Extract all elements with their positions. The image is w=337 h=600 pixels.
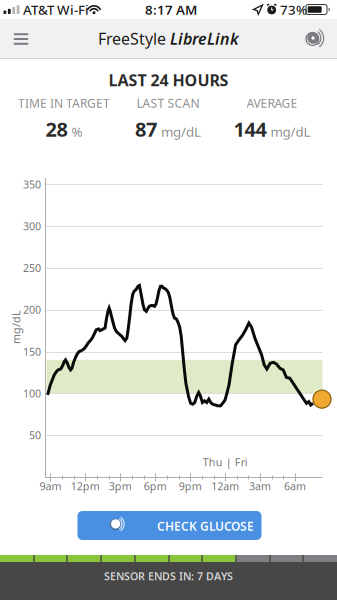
staticText: 200 (23, 303, 41, 317)
staticText: LAST SCAN (136, 95, 199, 111)
staticText: 350 (23, 177, 41, 191)
staticText: 3pm (109, 479, 132, 493)
staticText: AVERAGE (246, 95, 297, 111)
staticText: TIME IN TARGET (18, 95, 110, 111)
staticText: 6am (284, 479, 306, 493)
staticText: mg/dL (270, 123, 310, 140)
staticText: 87 (135, 116, 157, 142)
button[interactable]: Scan sensor (293, 19, 337, 58)
button[interactable]: CHECK GLUCOSE (77, 511, 261, 540)
staticText: mg/dL (161, 123, 201, 140)
staticText: % (71, 123, 82, 140)
staticText: 250 (23, 261, 41, 275)
staticText: FreeStyle LibreLink (98, 28, 239, 49)
staticText: 6pm (144, 479, 167, 493)
staticText: 12pm (71, 479, 100, 493)
staticText: AT&T Wi-Fi (23, 1, 89, 18)
staticText: 150 (23, 344, 41, 359)
staticText: 8:17 AM (145, 1, 197, 18)
staticText: LAST 24 HOURS (108, 69, 228, 91)
staticText: 73% (280, 1, 307, 18)
staticText: 28 (45, 116, 67, 142)
staticText: CHECK GLUCOSE (157, 518, 254, 534)
button[interactable]: Menu (0, 19, 42, 58)
staticText: mg/dL (0, 320, 33, 334)
staticText: 300 (23, 219, 41, 233)
staticText: 50 (29, 428, 41, 442)
staticText: 12am (211, 479, 239, 493)
staticText: 9pm (179, 479, 202, 493)
staticText: Thu | Fri (203, 455, 248, 469)
staticText: 100 (23, 386, 41, 400)
staticText: 3am (249, 479, 271, 493)
staticText: 9am (39, 479, 61, 493)
staticText: SENSOR ENDS IN: 7 DAYS (104, 569, 233, 583)
staticText: 144 (233, 116, 266, 142)
